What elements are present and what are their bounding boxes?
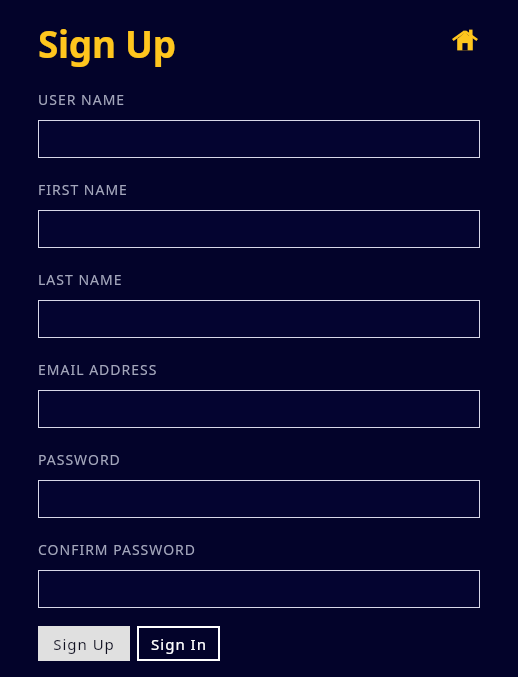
button[interactable] — [38, 210, 480, 248]
button[interactable]: Sign In — [137, 626, 220, 661]
staticText: CONFIRM PASSWORD — [38, 540, 197, 559]
staticText: PASSWORD — [38, 450, 121, 469]
button[interactable] — [38, 570, 480, 608]
button[interactable] — [38, 480, 480, 518]
staticText: LAST NAME — [38, 270, 123, 289]
button[interactable] — [38, 120, 480, 158]
staticText: EMAIL ADDRESS — [38, 360, 158, 379]
staticText: FIRST NAME — [38, 180, 128, 199]
button[interactable]: Sign Up — [38, 626, 130, 661]
button[interactable] — [38, 300, 480, 338]
staticText: USER NAME — [38, 90, 126, 109]
staticText: Sign Up — [53, 634, 115, 654]
button[interactable] — [38, 390, 480, 428]
button[interactable]: Home — [450, 25, 480, 55]
staticText: Sign In — [151, 634, 207, 654]
staticText: Sign Up — [38, 18, 176, 68]
